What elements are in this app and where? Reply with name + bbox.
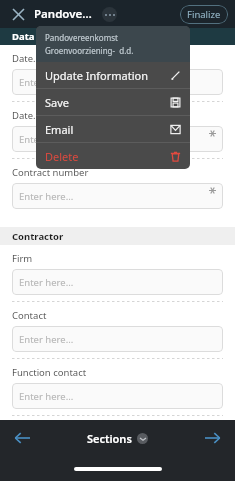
staticText: Contact — [12, 309, 47, 322]
button[interactable]: Delete — [36, 143, 190, 169]
button[interactable]: Next section — [197, 422, 229, 454]
staticText: Delete — [45, 149, 170, 164]
staticText: Enter here... — [19, 190, 74, 203]
button[interactable]: Save — [36, 89, 190, 115]
staticText: Date... — [12, 52, 41, 65]
staticText: Groenvoorziening- d.d. — [45, 45, 134, 56]
button[interactable]: Finalize — [180, 5, 228, 24]
staticText: Sections — [87, 431, 132, 446]
staticText: Data — [12, 30, 35, 43]
button[interactable]: Close — [7, 3, 29, 25]
button[interactable]: Update Information — [36, 62, 190, 88]
staticText: Enter here... — [19, 133, 74, 146]
staticText: Enter here... — [19, 333, 74, 346]
staticText: Firm — [12, 252, 33, 265]
button[interactable]: Enter here... — [12, 326, 223, 352]
button[interactable]: Sections — [87, 431, 148, 446]
staticText: Finalize — [187, 8, 221, 21]
staticText: Email — [45, 122, 170, 137]
staticText: Enter here... — [19, 276, 74, 289]
staticText: Pandovereenkomst — [45, 32, 118, 43]
button[interactable]: Enter here... — [12, 69, 223, 95]
staticText: Function contact — [12, 366, 87, 379]
staticText: Enter here... — [19, 390, 74, 403]
button[interactable]: Previous section — [6, 422, 38, 454]
staticText: Contract number — [12, 166, 89, 179]
staticText: Enter here... — [19, 76, 74, 89]
button[interactable]: Enter here... — [12, 183, 223, 209]
staticText: Contractor — [12, 230, 64, 243]
staticText: Update Information — [45, 68, 170, 83]
button[interactable]: More options — [102, 7, 117, 22]
staticText: Save — [45, 95, 170, 110]
button[interactable]: Email — [36, 116, 190, 142]
button[interactable]: Enter here... — [12, 126, 223, 152]
staticText: Pandovereenkomst G... — [34, 6, 96, 22]
staticText: Date... — [12, 109, 41, 122]
button[interactable]: Enter here... — [12, 383, 223, 409]
button[interactable]: Enter here... — [12, 269, 223, 295]
